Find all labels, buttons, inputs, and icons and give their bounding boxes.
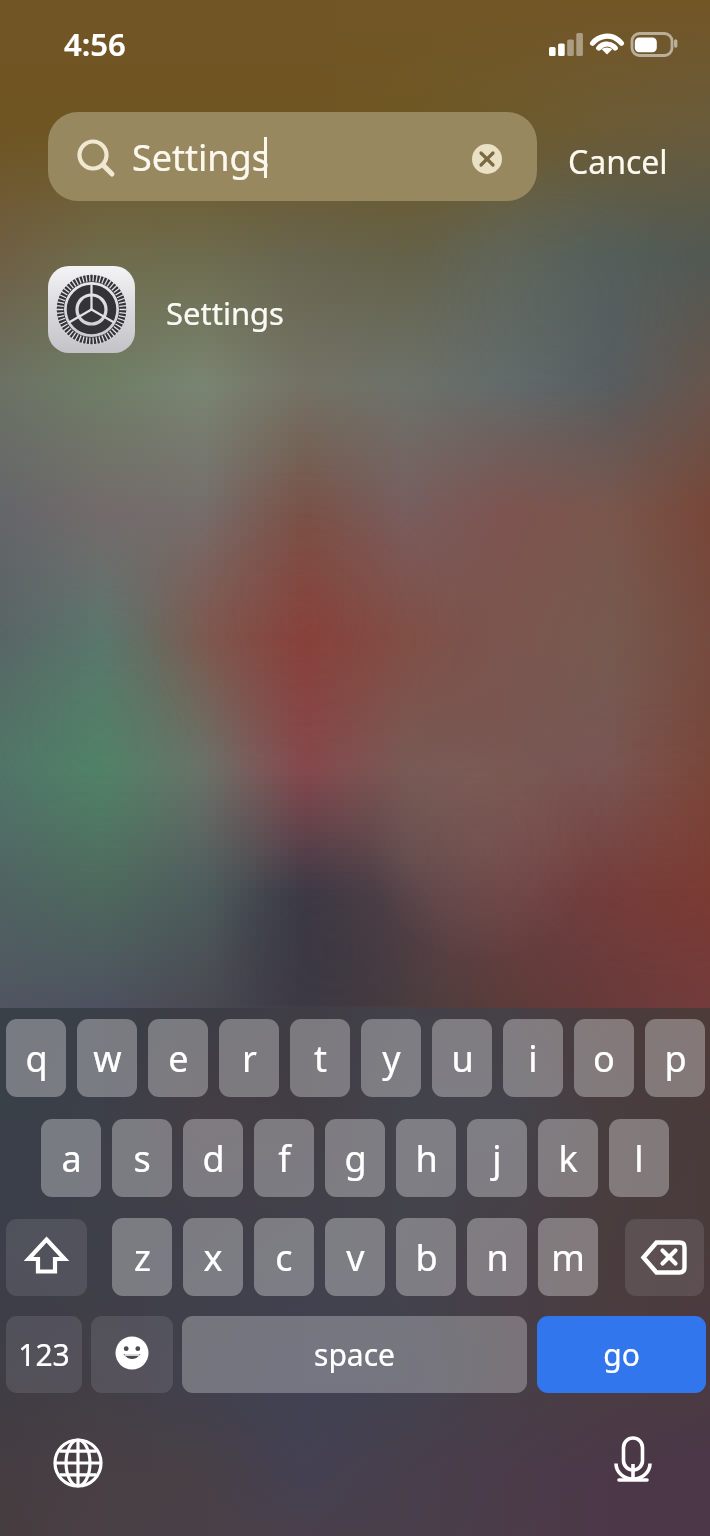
button[interactable]: Backspace <box>625 1219 704 1296</box>
button[interactable]: h <box>396 1119 456 1197</box>
button[interactable]: v <box>325 1218 385 1296</box>
staticText: j <box>492 1134 502 1183</box>
button[interactable]: space <box>182 1316 527 1393</box>
button[interactable]: Settings <box>48 112 537 201</box>
button[interactable]: Emoji <box>91 1316 173 1393</box>
button[interactable]: 123 <box>6 1316 82 1393</box>
staticText: k <box>558 1134 578 1183</box>
button[interactable]: g <box>325 1119 385 1197</box>
staticText: Cancel <box>568 140 668 184</box>
staticText: b <box>415 1233 438 1282</box>
button[interactable]: Cancel <box>558 134 678 190</box>
button[interactable]: s <box>112 1119 172 1197</box>
button[interactable]: f <box>254 1119 314 1197</box>
staticText: i <box>528 1034 538 1083</box>
staticText: y <box>382 1034 401 1083</box>
staticText: t <box>314 1034 327 1083</box>
staticText: Settings <box>132 133 269 182</box>
staticText: g <box>344 1134 367 1183</box>
staticText: s <box>133 1134 151 1183</box>
button[interactable]: n <box>467 1218 527 1296</box>
staticText: v <box>346 1233 365 1282</box>
button[interactable]: q <box>6 1019 66 1097</box>
button[interactable]: y <box>361 1019 421 1097</box>
staticText: c <box>275 1233 293 1282</box>
button[interactable]: r <box>219 1019 279 1097</box>
button[interactable]: p <box>645 1019 705 1097</box>
staticText: f <box>278 1134 291 1183</box>
staticText: go <box>603 1334 640 1375</box>
button[interactable]: b <box>396 1218 456 1296</box>
button[interactable]: Dictation <box>600 1428 666 1494</box>
staticText: Settings <box>166 292 284 334</box>
staticText: r <box>242 1034 257 1083</box>
staticText: e <box>168 1034 189 1083</box>
staticText: u <box>451 1034 474 1083</box>
button[interactable]: w <box>77 1019 137 1097</box>
button[interactable]: Clear text <box>472 144 502 174</box>
button[interactable]: a <box>41 1119 101 1197</box>
staticText: l <box>634 1134 644 1183</box>
staticText: space <box>314 1334 395 1375</box>
staticText: a <box>61 1134 82 1183</box>
staticText: w <box>93 1034 122 1083</box>
staticText: o <box>593 1034 615 1083</box>
button[interactable]: o <box>574 1019 634 1097</box>
button[interactable]: l <box>609 1119 669 1197</box>
staticText: 4:56 <box>64 23 126 65</box>
staticText: n <box>486 1233 509 1282</box>
button[interactable]: u <box>432 1019 492 1097</box>
button[interactable]: Change keyboard <box>45 1430 111 1496</box>
staticText: z <box>134 1233 151 1282</box>
button[interactable]: k <box>538 1119 598 1197</box>
button[interactable]: c <box>254 1218 314 1296</box>
button[interactable]: d <box>183 1119 243 1197</box>
button[interactable]: x <box>183 1218 243 1296</box>
staticText: h <box>415 1134 438 1183</box>
staticText: d <box>202 1134 225 1183</box>
button[interactable]: go <box>537 1316 706 1393</box>
staticText: 123 <box>18 1334 70 1375</box>
button[interactable]: i <box>503 1019 563 1097</box>
button[interactable]: m <box>538 1218 598 1296</box>
button[interactable]: j <box>467 1119 527 1197</box>
button[interactable]: e <box>148 1019 208 1097</box>
staticText: p <box>664 1034 687 1083</box>
button[interactable]: Settings <box>0 261 710 365</box>
button[interactable]: Shift <box>6 1219 87 1296</box>
staticText: x <box>203 1233 223 1282</box>
staticText: m <box>551 1233 585 1282</box>
button[interactable]: t <box>290 1019 350 1097</box>
button[interactable]: z <box>112 1218 172 1296</box>
staticText: q <box>25 1034 48 1083</box>
